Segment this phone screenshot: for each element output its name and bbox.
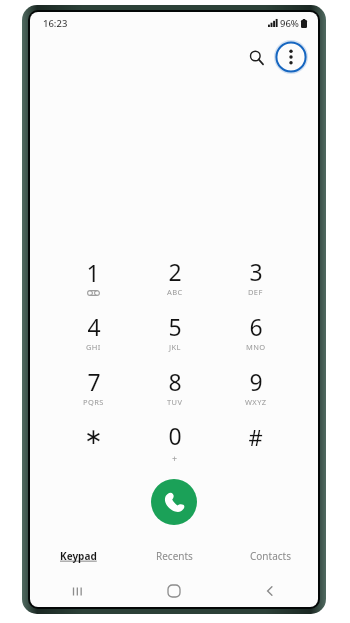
button[interactable]: 0	[134, 414, 215, 469]
staticText: 5	[168, 311, 182, 342]
button[interactable]: Call	[151, 479, 197, 525]
button[interactable]: 2	[134, 249, 215, 304]
staticText: 4	[87, 311, 101, 342]
button[interactable]: #	[215, 414, 296, 469]
staticText: 6	[249, 311, 263, 342]
button[interactable]: 5	[134, 304, 215, 359]
staticText: #	[248, 422, 263, 452]
staticText: 7	[87, 366, 101, 397]
button[interactable]: 4	[52, 304, 134, 359]
staticText: ABC	[167, 287, 183, 297]
staticText: 16:23	[43, 17, 68, 30]
button[interactable]: Home	[126, 577, 222, 605]
staticText: TUV	[167, 397, 183, 407]
button[interactable]: Search	[241, 42, 271, 72]
staticText: Recents	[156, 549, 193, 563]
button[interactable]: Recent apps	[30, 577, 126, 605]
button[interactable]: Recents	[126, 543, 222, 569]
button[interactable]: 8	[134, 359, 215, 414]
staticText: Contacts	[250, 549, 291, 563]
staticText: 2	[168, 256, 182, 287]
staticText: 96%	[280, 17, 299, 30]
staticText: JKL	[169, 342, 181, 352]
staticText: GHI	[86, 342, 101, 352]
button[interactable]: 3	[215, 249, 296, 304]
button[interactable]: 6	[215, 304, 296, 359]
staticText: 9	[249, 366, 263, 397]
button[interactable]: Back	[222, 577, 318, 605]
button[interactable]: 1	[52, 249, 134, 304]
staticText: 1	[86, 257, 100, 288]
staticText: WXYZ	[245, 397, 267, 407]
staticText: PQRS	[83, 397, 104, 407]
button[interactable]: Keypad	[30, 543, 126, 569]
staticText: DEF	[248, 287, 263, 297]
staticText: Keypad	[60, 549, 97, 563]
button[interactable]: ∗	[52, 414, 134, 469]
staticText: 3	[249, 256, 263, 287]
button[interactable]: More options	[274, 40, 308, 74]
button[interactable]: 7	[52, 359, 134, 414]
staticText: MNO	[246, 342, 266, 352]
button[interactable]: Contacts	[222, 543, 318, 569]
staticText: 0	[168, 420, 182, 451]
staticText: ∗	[84, 424, 103, 450]
button[interactable]: 9	[215, 359, 296, 414]
staticText: +	[172, 452, 178, 464]
staticText: 8	[168, 366, 182, 397]
